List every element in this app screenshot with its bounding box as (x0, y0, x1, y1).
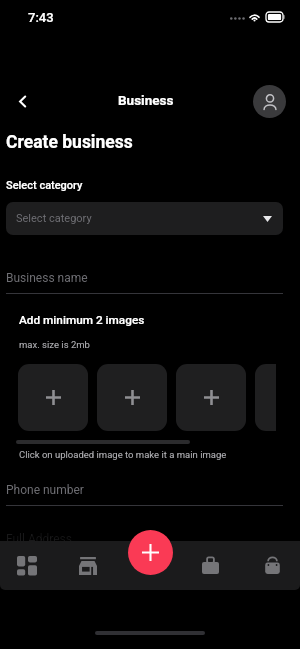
staticText: 7:43 (28, 10, 54, 25)
button[interactable]: Add (128, 530, 173, 575)
button[interactable]: Add image (255, 364, 276, 431)
staticText: Select category (6, 179, 83, 192)
button[interactable]: Business name (6, 271, 283, 295)
staticText: Click on uploaded image to make it a mai… (19, 449, 227, 460)
button[interactable]: Shop (248, 543, 296, 588)
button[interactable]: Select category (6, 202, 283, 235)
staticText: Business name (6, 271, 88, 285)
button[interactable]: Dashboard (2, 543, 50, 588)
staticText: Business (118, 92, 174, 108)
button[interactable]: Full Address (6, 532, 283, 556)
button[interactable]: Add image (18, 364, 88, 431)
button[interactable]: Profile (253, 85, 286, 118)
staticText: Create business (6, 132, 133, 153)
button[interactable]: Store (64, 543, 112, 588)
button[interactable]: Add image (176, 364, 246, 431)
button[interactable]: Add image (97, 364, 167, 431)
staticText: Phone number (6, 483, 84, 497)
staticText: max. size is 2mb (19, 339, 90, 350)
staticText: Add minimum 2 images (19, 313, 145, 327)
button[interactable]: Back (5, 84, 39, 118)
button[interactable]: Phone number (6, 483, 283, 507)
staticText: Select category (16, 212, 92, 225)
button[interactable]: Jobs (186, 543, 234, 588)
staticText: Full Address (6, 532, 72, 546)
